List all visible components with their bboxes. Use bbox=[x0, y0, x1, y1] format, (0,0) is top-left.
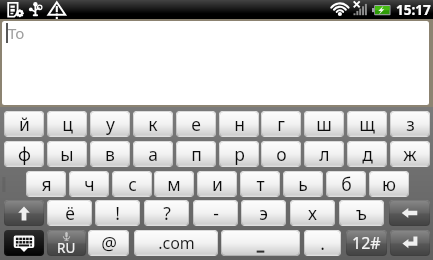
staticText: ш bbox=[316, 112, 332, 136]
button[interactable]: у bbox=[90, 111, 130, 137]
button[interactable]: ш bbox=[304, 111, 344, 137]
staticText: х bbox=[308, 201, 317, 225]
staticText: щ bbox=[359, 112, 375, 136]
button[interactable]: й bbox=[4, 111, 44, 137]
staticText: я bbox=[41, 172, 52, 196]
button[interactable]: Enter bbox=[390, 230, 430, 256]
staticText: ю bbox=[382, 172, 396, 196]
staticText: ц bbox=[62, 112, 73, 136]
button[interactable]: Hide keyboard bbox=[4, 230, 44, 256]
staticText: в bbox=[105, 142, 115, 166]
button[interactable]: п bbox=[176, 141, 216, 167]
staticText: ё bbox=[65, 201, 75, 225]
button[interactable]: - bbox=[193, 200, 238, 226]
button[interactable]: и bbox=[197, 171, 237, 197]
staticText: . bbox=[320, 231, 325, 255]
button[interactable]: Switch input language bbox=[47, 230, 86, 256]
button[interactable]: н bbox=[219, 111, 259, 137]
staticText: г bbox=[277, 112, 285, 136]
button[interactable]: г bbox=[261, 111, 301, 137]
button[interactable]: ё bbox=[47, 200, 92, 226]
button[interactable]: Shift bbox=[4, 200, 44, 226]
button[interactable]: в bbox=[90, 141, 130, 167]
button[interactable]: э bbox=[241, 200, 286, 226]
button[interactable]: т bbox=[240, 171, 280, 197]
button[interactable]: . bbox=[304, 230, 341, 256]
button[interactable]: с bbox=[112, 171, 152, 197]
button[interactable]: ц bbox=[47, 111, 87, 137]
button[interactable]: р bbox=[219, 141, 259, 167]
staticText: й bbox=[19, 112, 30, 136]
staticText: э bbox=[259, 201, 268, 225]
button[interactable]: ю bbox=[369, 171, 409, 197]
staticText: ч bbox=[84, 172, 95, 196]
staticText: ! bbox=[115, 201, 120, 225]
button[interactable]: о bbox=[261, 141, 301, 167]
staticText: б bbox=[341, 172, 352, 196]
button[interactable]: ! bbox=[95, 200, 140, 226]
staticText: р bbox=[234, 142, 245, 166]
button[interactable]: я bbox=[26, 171, 66, 197]
staticText: т bbox=[256, 172, 265, 196]
staticText: ф bbox=[18, 142, 31, 166]
button[interactable]: х bbox=[290, 200, 335, 226]
staticText: з bbox=[406, 112, 415, 136]
button[interactable]: ч bbox=[69, 171, 109, 197]
staticText: о bbox=[276, 142, 287, 166]
staticText: .com bbox=[158, 232, 195, 254]
staticText: а bbox=[148, 142, 158, 166]
button[interactable]: з bbox=[390, 111, 430, 137]
button[interactable]: ъ bbox=[339, 200, 384, 226]
button[interactable]: ы bbox=[47, 141, 87, 167]
staticText: л bbox=[319, 142, 330, 166]
staticText: 12# bbox=[352, 232, 381, 254]
staticText: ъ bbox=[356, 201, 367, 225]
button[interactable]: Numbers and symbols bbox=[346, 230, 387, 256]
button[interactable]: ? bbox=[144, 200, 189, 226]
staticText: ь bbox=[298, 172, 308, 196]
button[interactable]: @ bbox=[88, 230, 129, 256]
staticText: - bbox=[213, 201, 219, 225]
staticText: м bbox=[167, 172, 181, 196]
staticText: ы bbox=[60, 142, 74, 166]
staticText: ж bbox=[403, 142, 417, 166]
staticText: и bbox=[212, 172, 223, 196]
staticText: п bbox=[191, 142, 202, 166]
button[interactable]: Backspace bbox=[389, 200, 430, 226]
button[interactable]: л bbox=[304, 141, 344, 167]
button[interactable]: м bbox=[154, 171, 194, 197]
button[interactable]: д bbox=[347, 141, 387, 167]
staticText: с bbox=[128, 172, 137, 196]
button[interactable]: To bbox=[2, 21, 429, 105]
button[interactable]: ь bbox=[283, 171, 323, 197]
staticText: RU bbox=[57, 239, 76, 256]
button[interactable]: Space bbox=[221, 230, 300, 256]
button[interactable]: ф bbox=[4, 141, 44, 167]
staticText: е bbox=[191, 112, 201, 136]
button[interactable]: ж bbox=[390, 141, 430, 167]
staticText: ? bbox=[163, 201, 171, 225]
button[interactable]: щ bbox=[347, 111, 387, 137]
staticText: у bbox=[106, 112, 115, 136]
button[interactable]: а bbox=[133, 141, 173, 167]
button[interactable]: .com bbox=[134, 230, 218, 256]
staticText: к bbox=[148, 112, 158, 136]
button[interactable]: б bbox=[326, 171, 366, 197]
button[interactable]: к bbox=[133, 111, 173, 137]
staticText: To bbox=[8, 23, 25, 43]
button[interactable]: е bbox=[176, 111, 216, 137]
staticText: @ bbox=[101, 231, 117, 255]
staticText: н bbox=[234, 112, 245, 136]
staticText: 15:17 bbox=[396, 1, 431, 19]
staticText: д bbox=[362, 142, 373, 166]
